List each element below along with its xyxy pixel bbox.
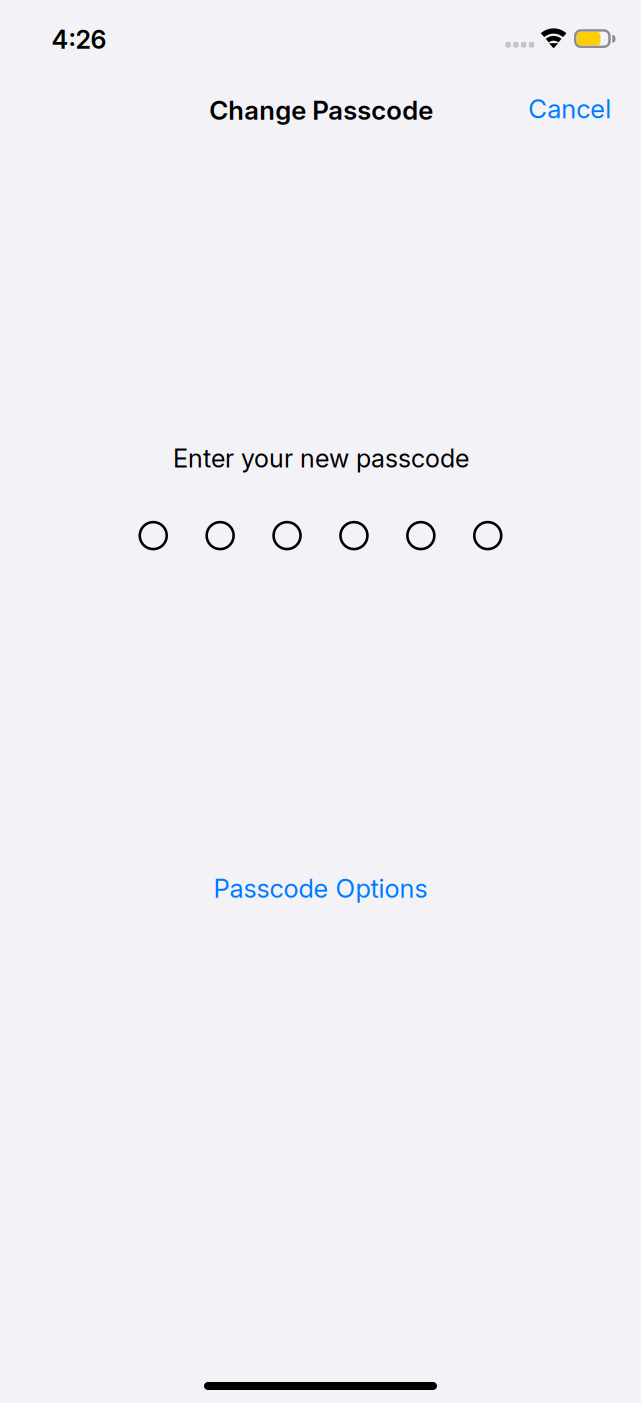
- staticText: 4:26: [52, 24, 107, 55]
- staticText: Passcode Options: [213, 873, 427, 904]
- staticText: Cancel: [528, 93, 611, 124]
- button[interactable]: Cancel: [517, 85, 623, 133]
- button[interactable]: Passcode Options: [190, 865, 450, 911]
- staticText: Enter your new passcode: [173, 443, 469, 474]
- staticText: Change Passcode: [209, 94, 433, 126]
